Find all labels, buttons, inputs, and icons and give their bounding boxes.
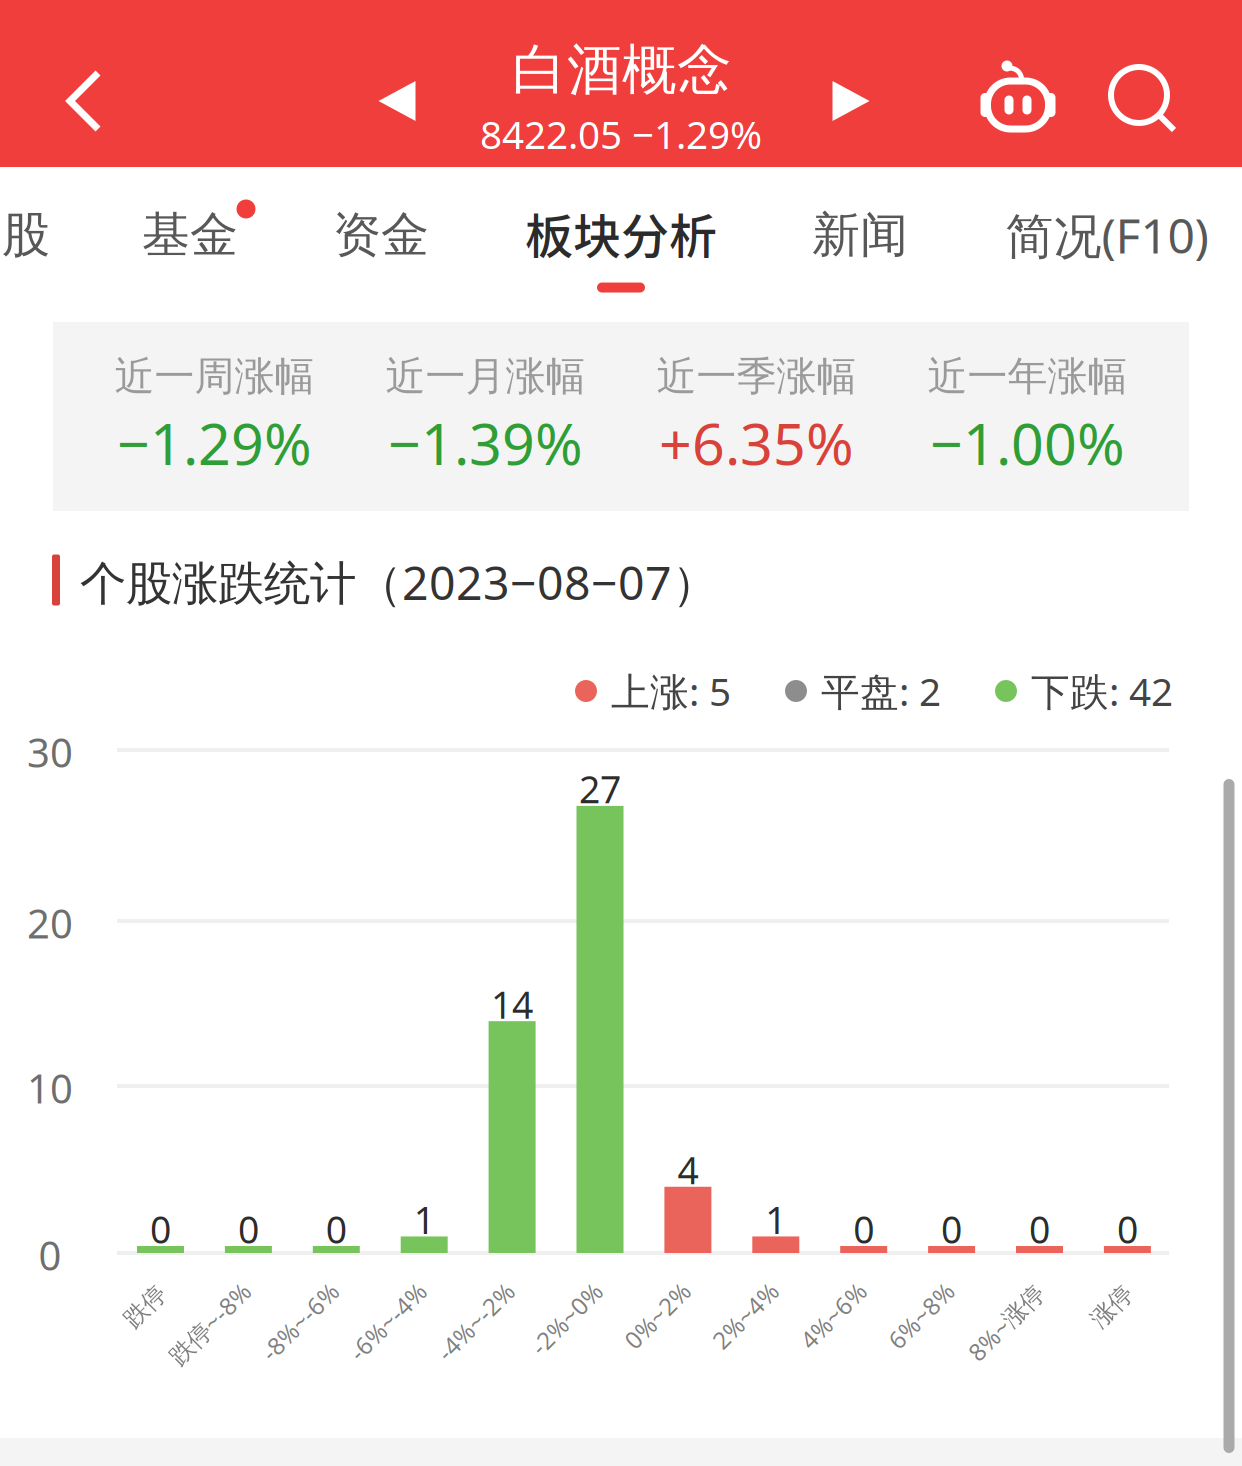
staticText: 新闻	[812, 205, 908, 265]
staticText: 2%~4%	[704, 1299, 786, 1332]
staticText: 10	[27, 1061, 73, 1115]
staticText: 个股涨跌统计（2023−08−07）	[80, 550, 718, 614]
button[interactable]: AI assistant	[953, 19, 1083, 169]
staticText: 下跌: 42	[1031, 665, 1173, 717]
staticText: 平盘: 2	[821, 665, 941, 717]
button[interactable]: Next sector	[801, 41, 901, 161]
staticText: 跌停~-8%	[158, 1307, 262, 1340]
staticText: 0	[326, 1204, 347, 1254]
staticText: 0	[941, 1204, 962, 1254]
staticText: -8%~-6%	[251, 1305, 349, 1338]
button[interactable]: 板块分析	[503, 174, 739, 292]
staticText: 0	[150, 1204, 171, 1254]
staticText: 简况(F10)	[1005, 202, 1208, 268]
staticText: 白酒概念	[512, 36, 732, 104]
staticText: 资金	[333, 205, 429, 265]
staticText: 4%~6%	[792, 1299, 874, 1332]
staticText: 近一周涨幅	[114, 351, 314, 402]
staticText: 近一季涨幅	[656, 351, 856, 402]
staticText: +6.35%	[659, 404, 854, 482]
staticText: 近一月涨幅	[385, 351, 585, 402]
staticText: −1.00%	[930, 404, 1125, 482]
staticText: −1.39%	[388, 404, 583, 482]
staticText: 涨停	[1088, 1291, 1136, 1322]
staticText: 1	[414, 1194, 435, 1245]
button[interactable]: 基金	[120, 181, 260, 289]
staticText: 8422.05 −1.29%	[480, 108, 762, 160]
staticText: -2%~0%	[521, 1302, 611, 1335]
button[interactable]: 简况(F10)	[983, 178, 1230, 292]
staticText: 0	[853, 1204, 874, 1254]
staticText: 6%~8%	[880, 1299, 962, 1332]
button[interactable]: 新闻	[790, 181, 930, 289]
staticText: 0	[238, 1204, 259, 1254]
button[interactable]: Search	[1079, 25, 1209, 175]
staticText: 0	[38, 1228, 61, 1282]
staticText: 板块分析	[525, 198, 717, 268]
staticText: 14	[491, 979, 533, 1029]
staticText: -4%~-2%	[427, 1305, 525, 1338]
button[interactable]: Previous sector	[347, 41, 447, 161]
button[interactable]: Back	[19, 21, 149, 181]
staticText: 30	[27, 725, 73, 779]
staticText: −1.29%	[117, 404, 312, 482]
staticText: 0	[1029, 1204, 1050, 1254]
staticText: 跌停	[121, 1291, 169, 1322]
staticText: 27	[579, 763, 621, 814]
staticText: 0%~2%	[616, 1299, 698, 1332]
staticText: 个股	[0, 205, 50, 265]
staticText: 20	[27, 896, 73, 950]
button[interactable]: 资金	[311, 181, 451, 289]
staticText: 8%~涨停	[958, 1306, 1054, 1339]
staticText: 近一年涨幅	[927, 351, 1127, 402]
staticText: 基金	[142, 205, 238, 265]
staticText: 4	[677, 1144, 698, 1195]
button[interactable]: 个股	[0, 181, 72, 289]
staticText: 上涨: 5	[611, 665, 731, 717]
staticText: 0	[1117, 1204, 1138, 1254]
staticText: -6%~-4%	[339, 1305, 437, 1338]
staticText: 1	[765, 1194, 786, 1245]
